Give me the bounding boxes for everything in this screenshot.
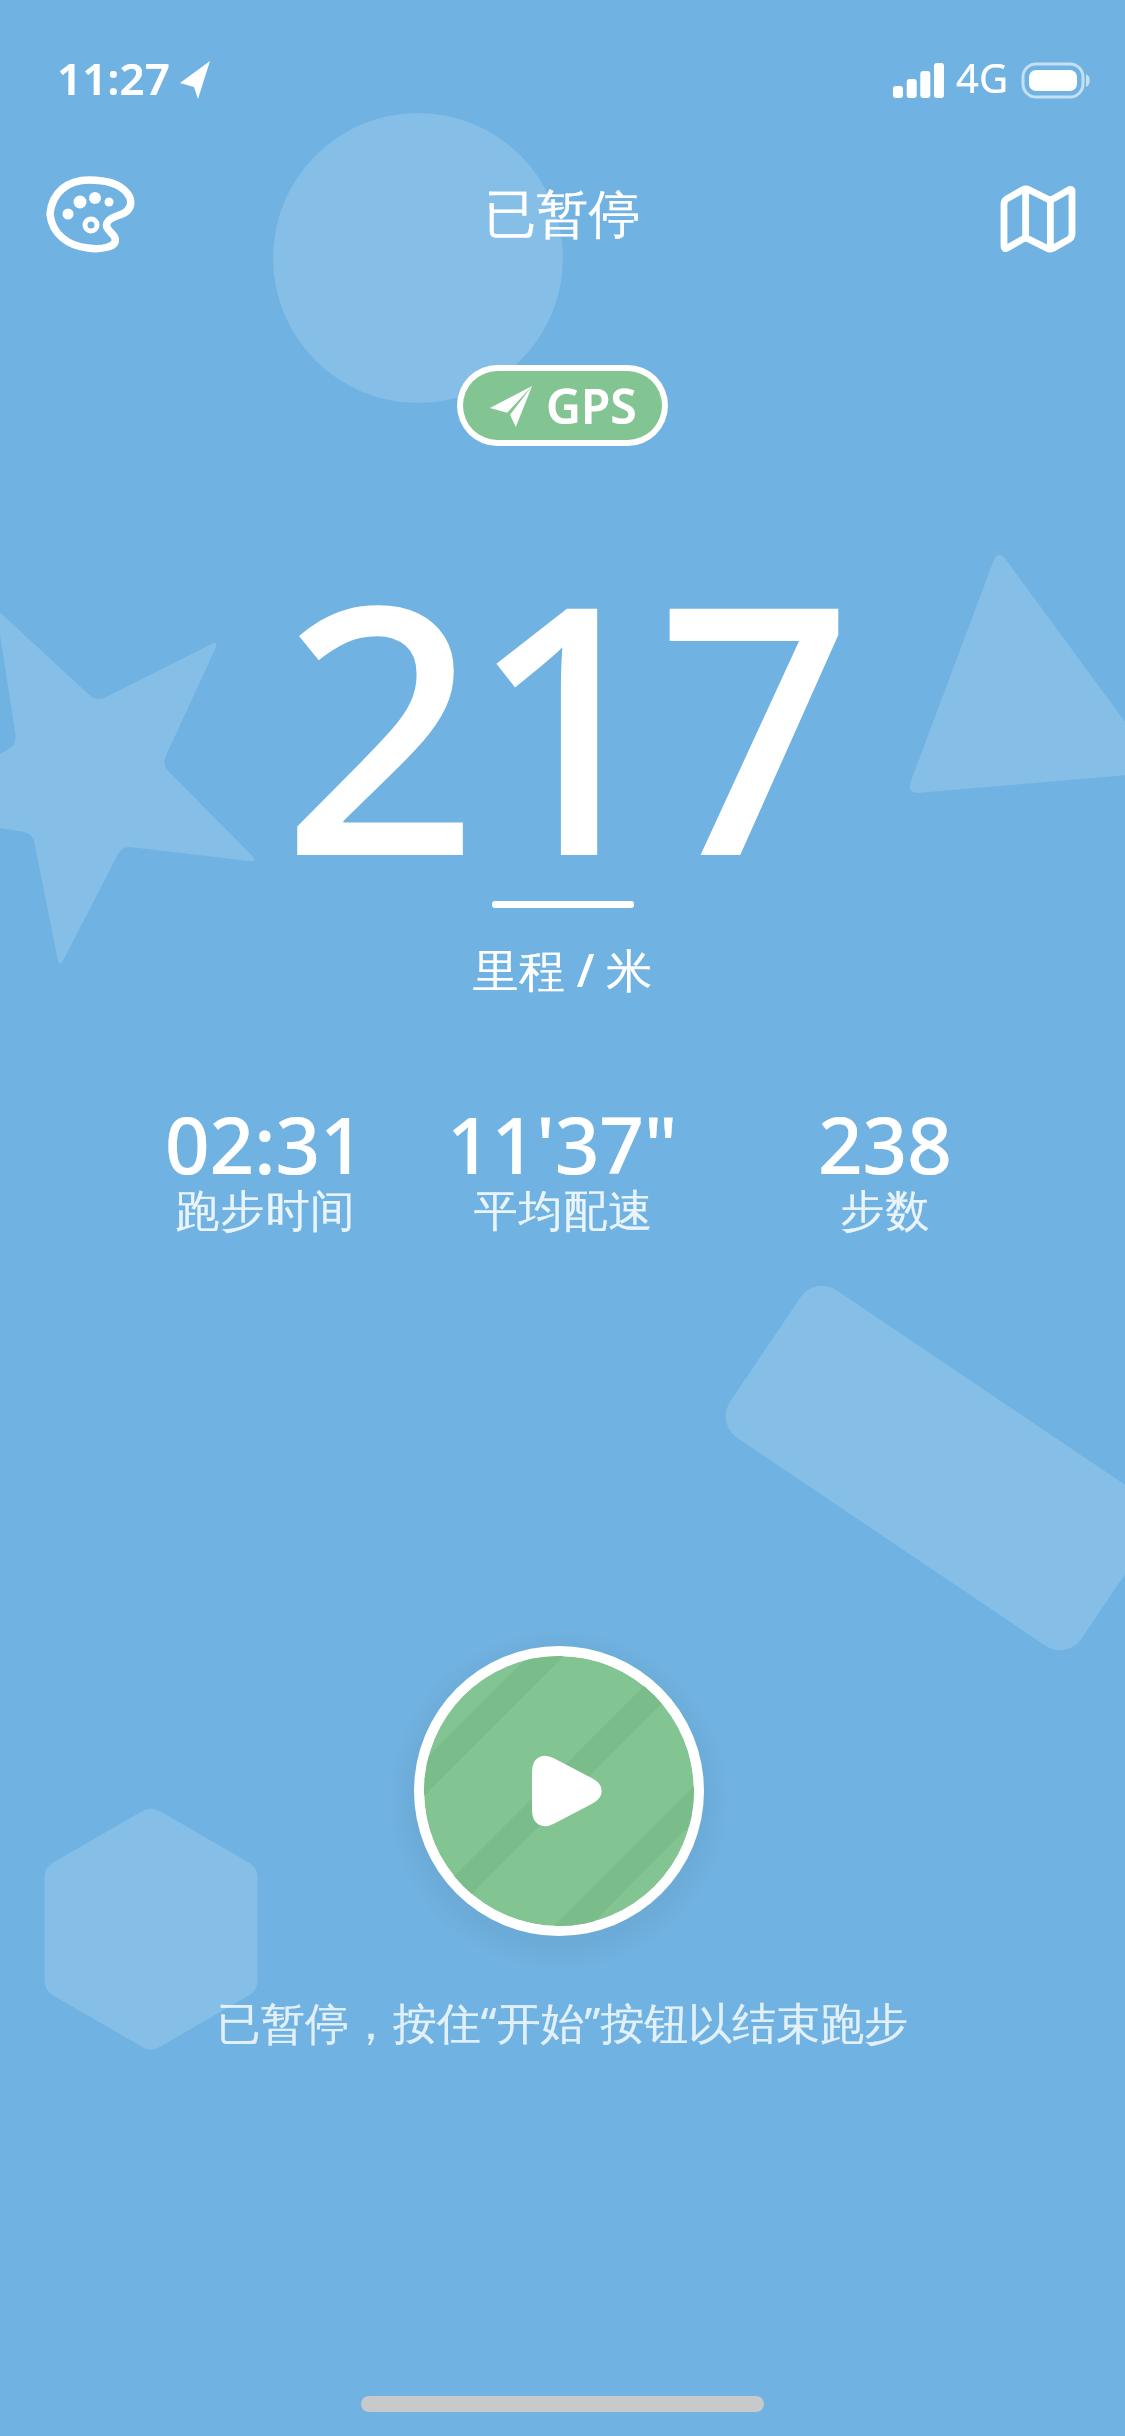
- staticText: 11'37": [447, 1091, 678, 1197]
- button[interactable]: GPS: [457, 365, 668, 446]
- button[interactable]: [414, 1646, 704, 1936]
- staticText: 238: [818, 1091, 952, 1197]
- staticText: 02:31: [165, 1091, 365, 1197]
- staticText: GPS: [546, 373, 637, 438]
- staticText: 里程 / 米: [0, 938, 1125, 1001]
- staticText: 11:27: [57, 48, 170, 108]
- staticText: 已暂停，按住“开始”按钮以结束跑步: [0, 1992, 1125, 2052]
- staticText: 跑步时间: [175, 1184, 355, 1239]
- staticText: 平均配速: [473, 1184, 653, 1239]
- button[interactable]: [990, 172, 1086, 262]
- staticText: 步数: [840, 1184, 930, 1239]
- staticText: 217: [0, 486, 1125, 956]
- staticText: 4G: [956, 50, 1008, 104]
- staticText: 已暂停: [0, 182, 1125, 248]
- button[interactable]: [38, 168, 144, 262]
